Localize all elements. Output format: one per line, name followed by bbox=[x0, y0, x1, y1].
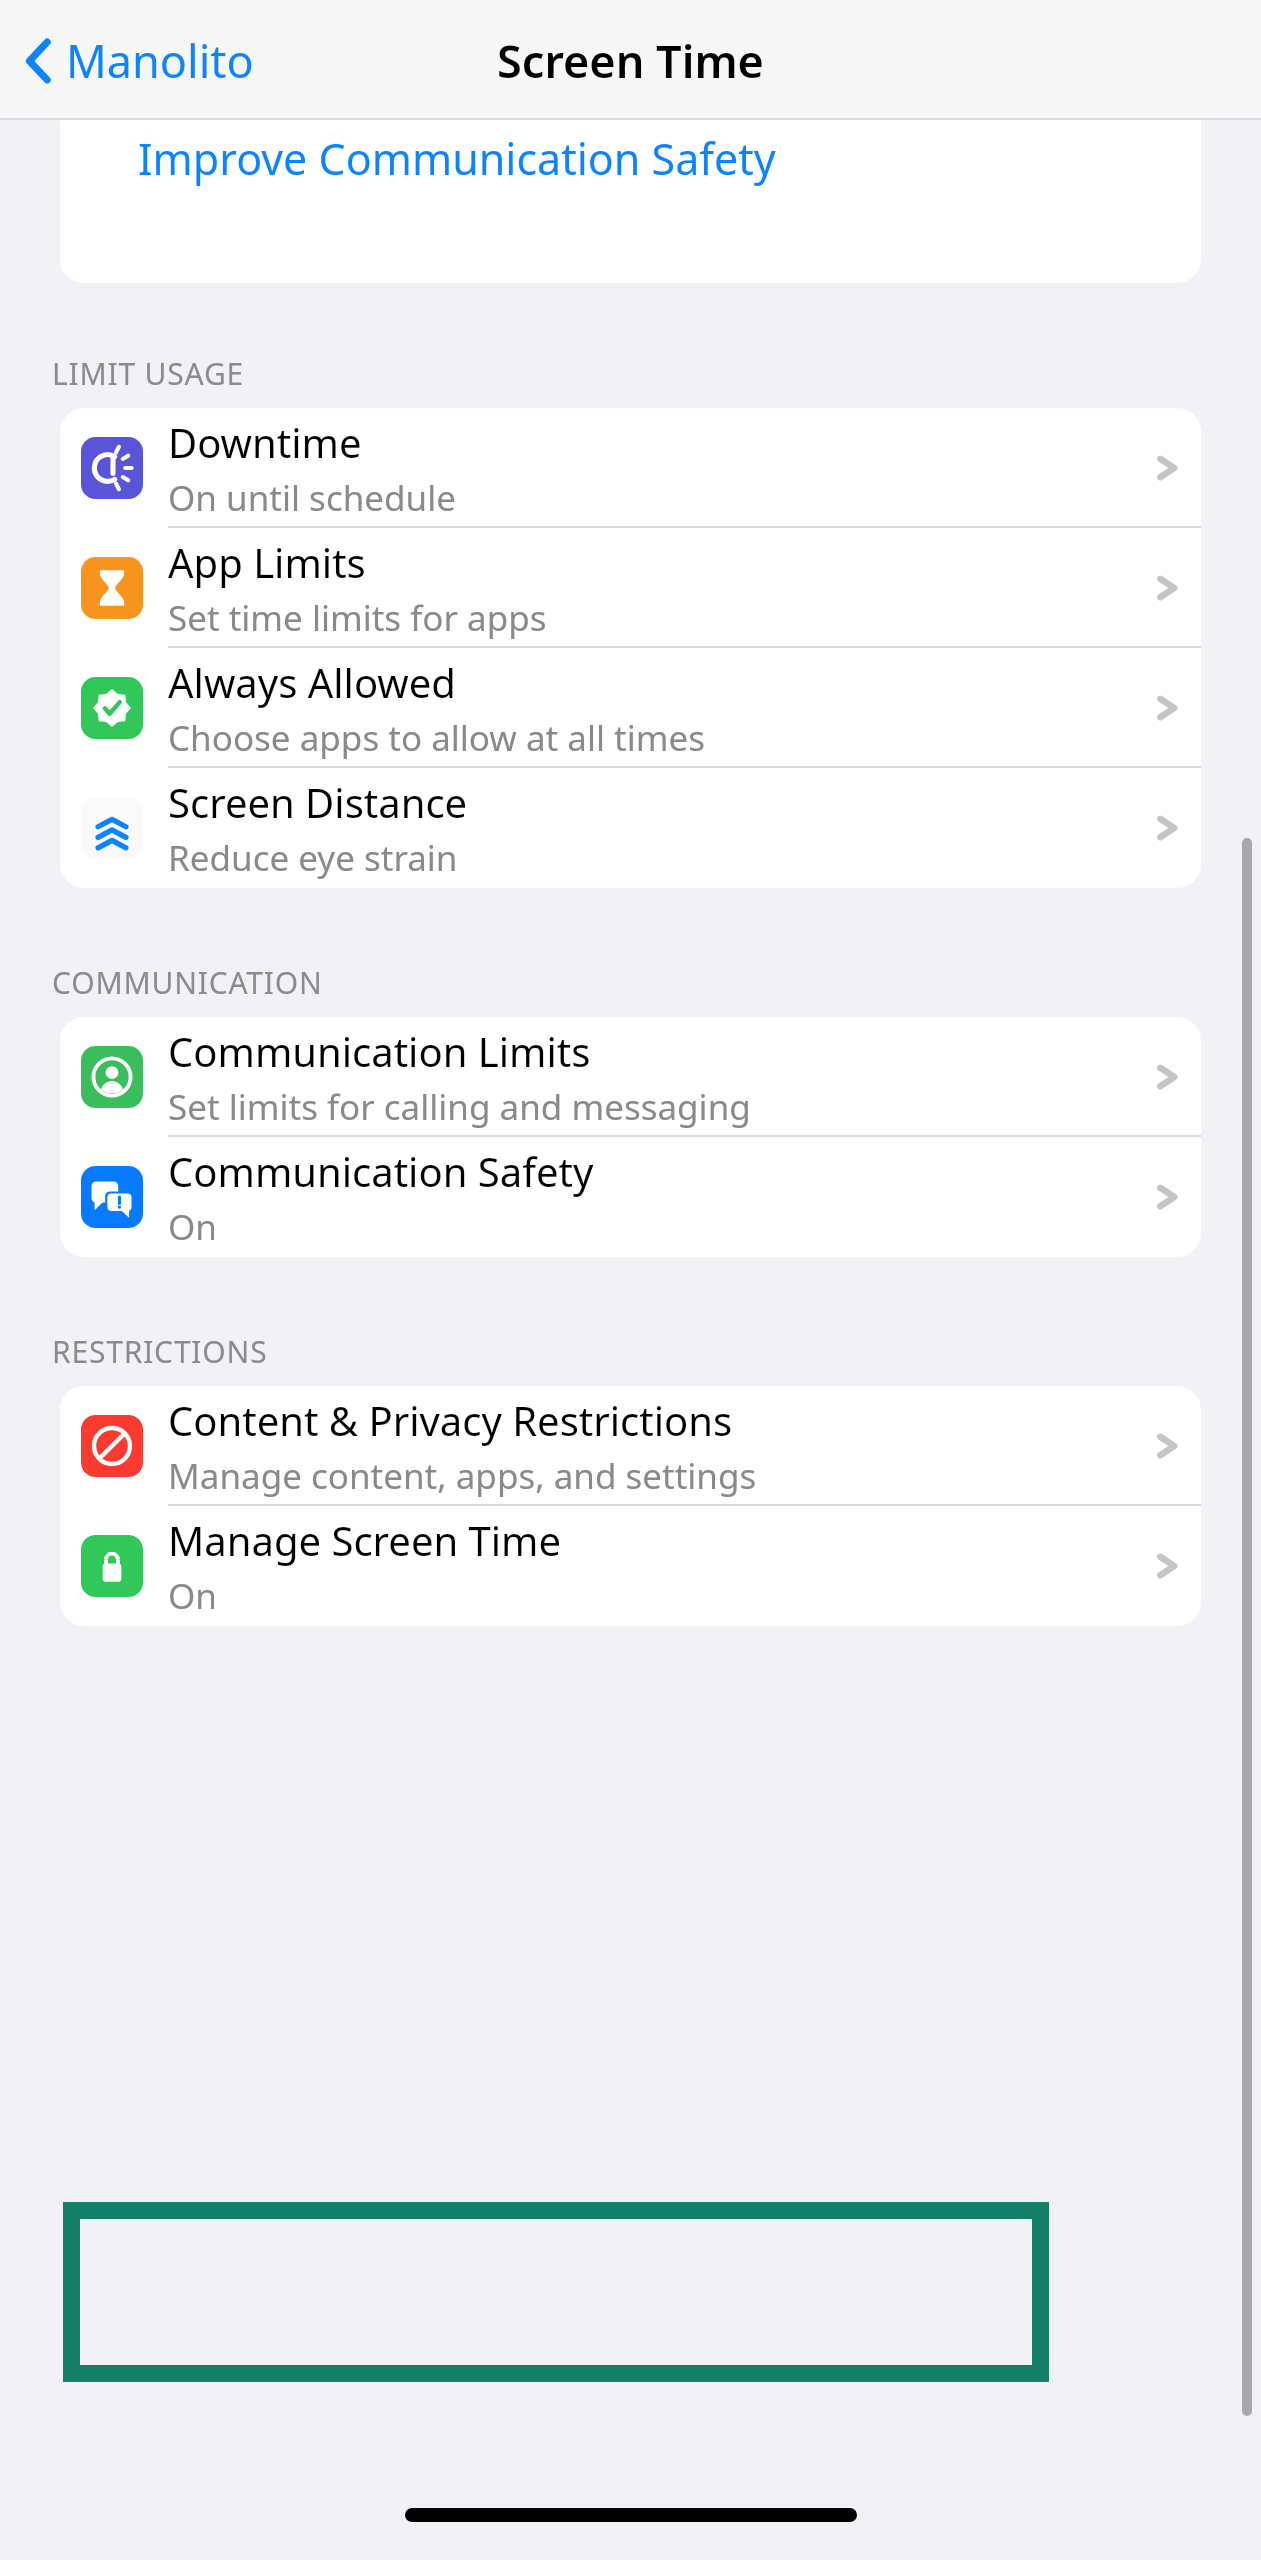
button[interactable]: Manage Screen Time bbox=[60, 1506, 1201, 1626]
staticText: Set limits for calling and messaging bbox=[168, 1083, 751, 1131]
staticText: Manage Screen Time bbox=[168, 1513, 562, 1567]
staticText: LIMIT USAGE bbox=[52, 353, 245, 394]
staticText: Choose apps to allow at all times bbox=[168, 714, 706, 762]
button[interactable]: Downtime bbox=[60, 408, 1201, 528]
staticText: Communication Safety bbox=[168, 1144, 594, 1198]
staticText: On bbox=[168, 1572, 217, 1620]
button[interactable]: Communication Limits bbox=[60, 1017, 1201, 1137]
staticText: Downtime bbox=[168, 415, 362, 469]
staticText: RESTRICTIONS bbox=[52, 1331, 268, 1372]
staticText: Always Allowed bbox=[168, 655, 456, 709]
staticText: Manolito bbox=[66, 30, 254, 91]
button[interactable]: Always Allowed bbox=[60, 648, 1201, 768]
staticText: On until schedule bbox=[168, 474, 456, 522]
staticText: Reduce eye strain bbox=[168, 834, 458, 882]
button[interactable]: Content & Privacy Restrictions bbox=[60, 1386, 1201, 1506]
other: Back bbox=[22, 34, 56, 88]
staticText: Set time limits for apps bbox=[168, 594, 547, 642]
staticText: COMMUNICATION bbox=[52, 962, 323, 1003]
staticText: Screen Distance bbox=[168, 775, 468, 829]
button[interactable]: Communication Safety bbox=[60, 1137, 1201, 1257]
staticText: Manage content, apps, and settings bbox=[168, 1452, 757, 1500]
button[interactable]: Screen Distance bbox=[60, 768, 1201, 888]
button[interactable]: App Limits bbox=[60, 528, 1201, 648]
staticText: On bbox=[168, 1203, 217, 1251]
staticText: Communication Limits bbox=[168, 1024, 591, 1078]
staticText: Screen Time bbox=[497, 30, 764, 91]
staticText: Improve Communication Safety bbox=[138, 129, 776, 188]
staticText: Content & Privacy Restrictions bbox=[168, 1393, 733, 1447]
button[interactable]: Back bbox=[22, 30, 254, 91]
staticText: App Limits bbox=[168, 535, 366, 589]
button[interactable]: Improve Communication Safety bbox=[60, 98, 1201, 218]
